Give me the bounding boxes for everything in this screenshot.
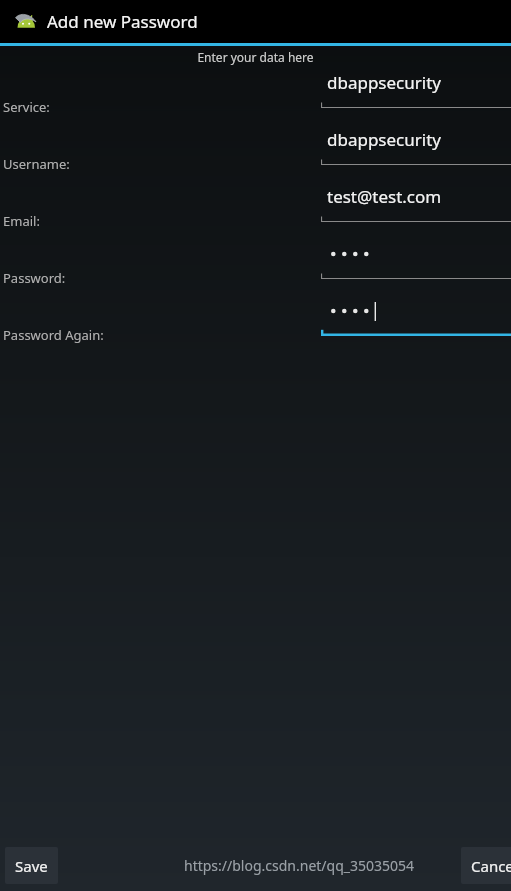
staticText: Password: bbox=[3, 269, 66, 287]
button[interactable] bbox=[321, 238, 511, 279]
staticText: test@test.com bbox=[327, 185, 442, 208]
staticText: Password Again: bbox=[3, 326, 104, 344]
staticText: Cancel bbox=[471, 856, 511, 876]
staticText: Username: bbox=[3, 155, 70, 173]
staticText: dbappsecurity bbox=[327, 71, 441, 94]
staticText: Save bbox=[15, 856, 48, 876]
staticText: Email: bbox=[3, 212, 40, 230]
button[interactable]: test@test.com bbox=[321, 181, 511, 222]
button[interactable]: dbappsecurity bbox=[321, 67, 511, 108]
staticText: dbappsecurity bbox=[327, 128, 441, 151]
staticText: https://blog.csdn.net/qq_35035054 bbox=[184, 856, 415, 875]
button[interactable]: Cancel bbox=[461, 847, 511, 884]
staticText: Add new Password bbox=[47, 10, 198, 33]
staticText: Service: bbox=[3, 98, 50, 116]
other: App icon bbox=[14, 12, 39, 31]
button[interactable]: dbappsecurity bbox=[321, 124, 511, 165]
button[interactable] bbox=[321, 295, 511, 336]
button[interactable]: Save bbox=[5, 847, 58, 884]
staticText: Enter your data here bbox=[197, 49, 314, 65]
